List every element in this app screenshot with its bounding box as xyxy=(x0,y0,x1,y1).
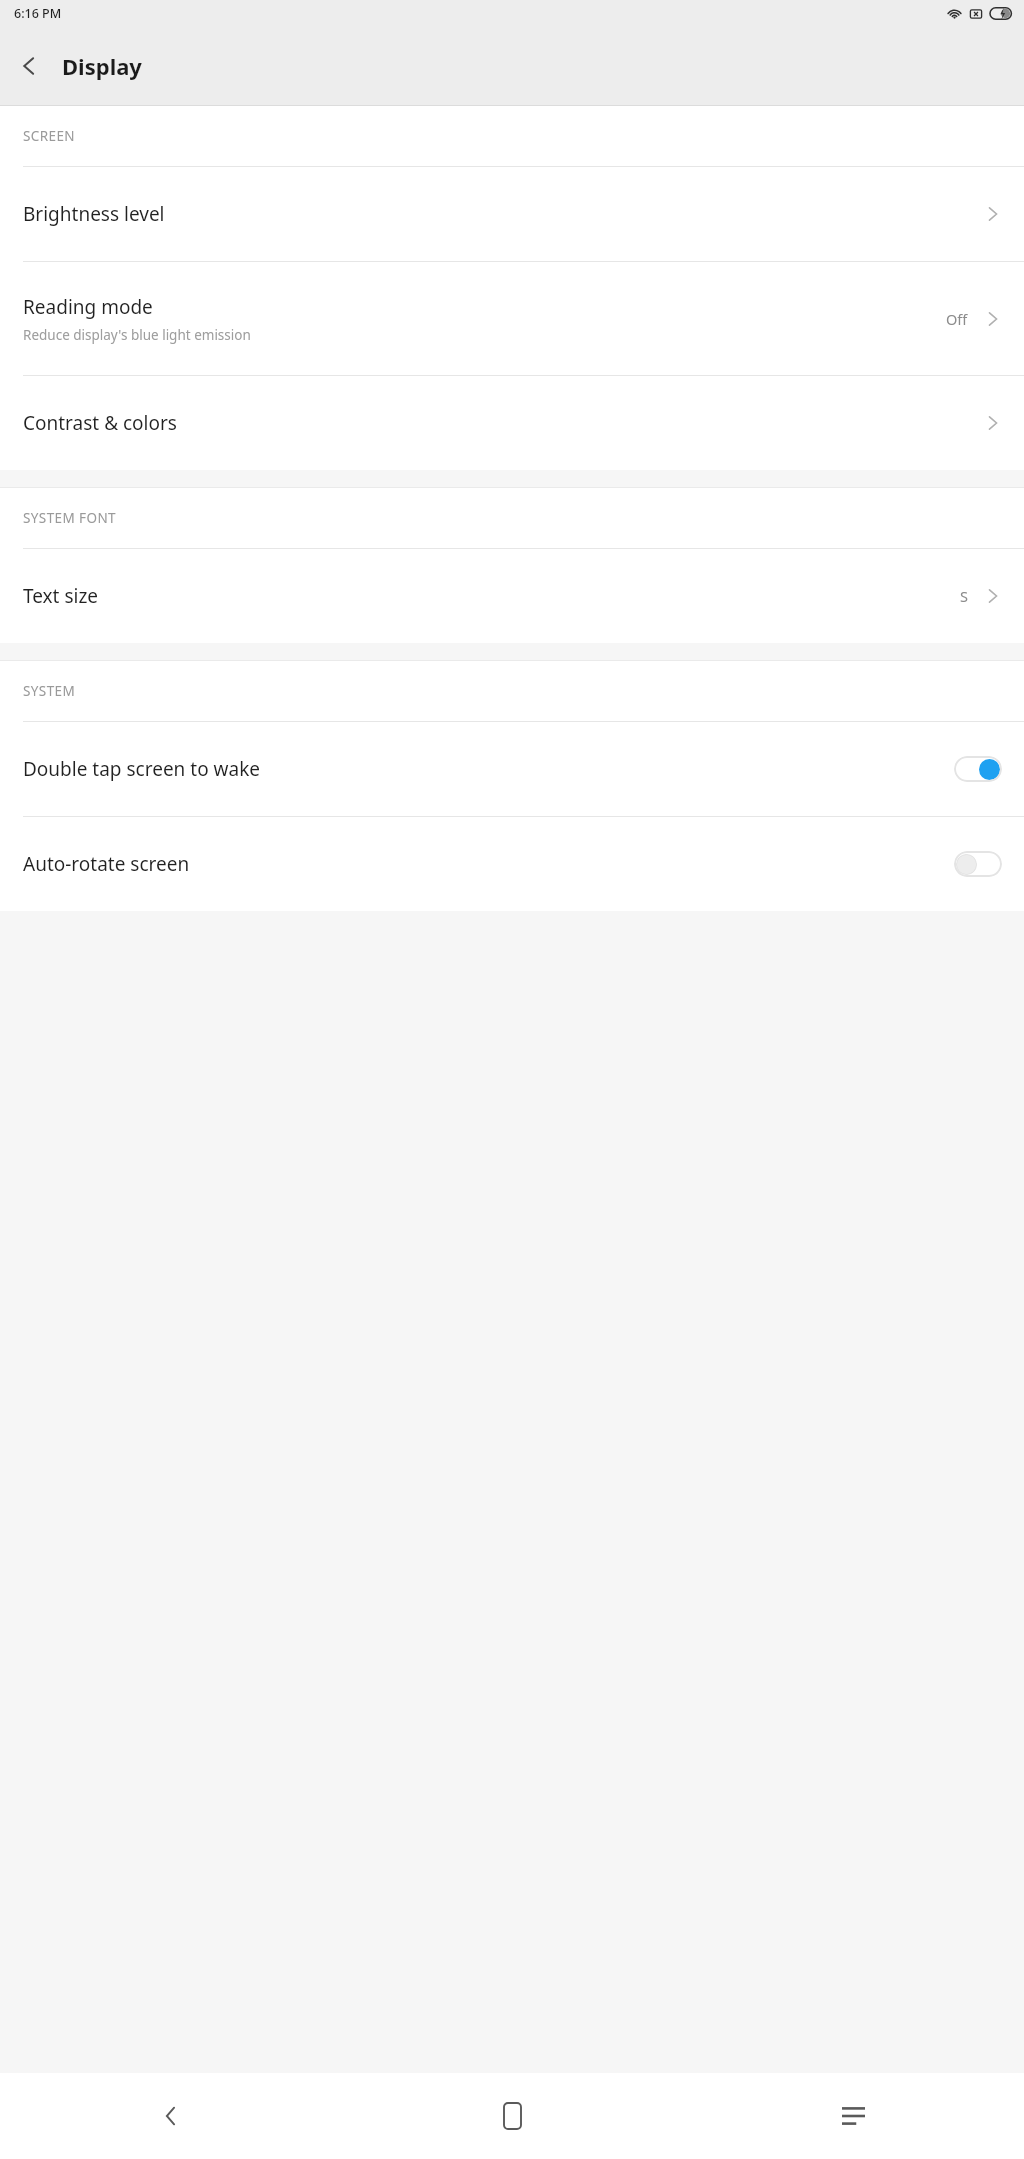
button[interactable]: Double tap screen to wake xyxy=(0,722,1024,816)
staticText: Text size xyxy=(23,583,99,609)
button[interactable]: Recent apps xyxy=(683,2073,1024,2159)
staticText: SYSTEM xyxy=(23,682,76,700)
staticText: SCREEN xyxy=(23,127,76,145)
button[interactable]: Text size xyxy=(0,549,1024,643)
staticText: 6:16 PM xyxy=(14,5,62,22)
button[interactable]: Auto-rotate screen xyxy=(0,817,1024,911)
staticText: Off xyxy=(946,309,968,329)
staticText: Display xyxy=(62,51,142,81)
button[interactable]: Back xyxy=(8,44,52,88)
staticText: S xyxy=(960,586,968,606)
button[interactable]: Contrast & colors xyxy=(0,376,1024,470)
staticText: Auto-rotate screen xyxy=(23,851,954,877)
button[interactable]: Home xyxy=(342,2073,683,2159)
button[interactable]: Brightness level xyxy=(0,167,1024,261)
staticText: Double tap screen to wake xyxy=(23,756,954,782)
staticText: Reading mode xyxy=(23,294,153,320)
button[interactable]: Back xyxy=(0,2073,342,2159)
staticText: Reduce display's blue light emission xyxy=(23,326,251,344)
button[interactable]: Reading mode xyxy=(0,262,1024,375)
staticText: SYSTEM FONT xyxy=(23,509,116,527)
staticText: Contrast & colors xyxy=(23,410,177,436)
staticText: Brightness level xyxy=(23,201,165,227)
